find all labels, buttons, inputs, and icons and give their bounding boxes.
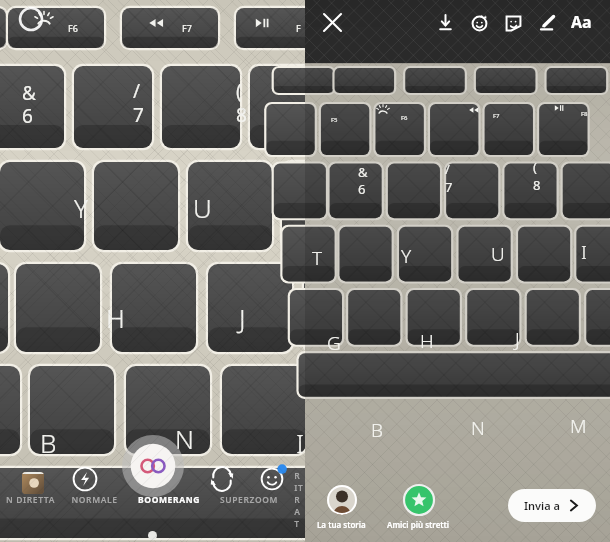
staticText: 6 xyxy=(22,103,33,129)
staticText: J xyxy=(239,300,246,335)
button[interactable]: Face filters xyxy=(259,464,287,492)
staticText: Y xyxy=(74,190,88,225)
staticText: NORMALE xyxy=(71,494,118,506)
button[interactable]: Switch camera xyxy=(209,466,235,492)
staticText: / xyxy=(445,160,450,178)
staticText: 8 xyxy=(236,102,247,128)
staticText: I xyxy=(296,425,305,460)
staticText: ( xyxy=(533,158,537,176)
button[interactable]: Save xyxy=(428,5,462,39)
staticText: & xyxy=(358,163,368,181)
staticText: / xyxy=(133,78,141,104)
button[interactable]: Effects xyxy=(462,5,496,39)
button[interactable]: BOOMERANG xyxy=(138,494,200,506)
button[interactable]: Flash xyxy=(72,466,98,492)
button[interactable]: N DIRETTA xyxy=(6,494,55,506)
staticText: F6 xyxy=(401,114,408,122)
staticText: U xyxy=(193,190,212,225)
staticText: Invia a xyxy=(524,498,560,513)
staticText: F5 xyxy=(331,116,338,124)
staticText: B xyxy=(371,417,383,443)
button[interactable]: RITRAT xyxy=(294,470,299,530)
staticText: N xyxy=(471,415,485,441)
staticText: N DIRETTA xyxy=(6,494,55,506)
staticText: & xyxy=(22,80,36,106)
staticText: 7 xyxy=(445,178,453,196)
staticText: T xyxy=(312,245,323,271)
staticText: F xyxy=(296,22,301,34)
staticText: U xyxy=(491,241,505,267)
staticText: La tua storia xyxy=(317,519,366,530)
button[interactable]: NORMALE xyxy=(71,494,118,506)
staticText: 7 xyxy=(133,102,144,128)
button[interactable]: Draw xyxy=(530,5,564,39)
button[interactable]: La tua storia xyxy=(317,485,366,530)
staticText: F7 xyxy=(182,22,192,34)
staticText: Aa xyxy=(571,11,592,33)
button[interactable]: SUPERZOOM xyxy=(220,494,278,506)
staticText: Amici più stretti xyxy=(387,519,450,530)
staticText: M xyxy=(570,413,587,439)
staticText: F7 xyxy=(493,112,500,120)
staticText: G xyxy=(327,330,341,356)
button[interactable]: Gallery xyxy=(22,472,44,494)
staticText: RITRAT xyxy=(294,470,299,530)
staticText: I xyxy=(581,239,587,265)
staticText: SUPERZOOM xyxy=(220,494,278,506)
staticText: H xyxy=(106,300,125,335)
button[interactable]: Stickers xyxy=(496,5,530,39)
button[interactable]: Capture boomerang xyxy=(122,435,184,497)
staticText: N xyxy=(175,421,194,456)
staticText: H xyxy=(420,328,434,354)
staticText: 8 xyxy=(533,176,541,194)
staticText: BOOMERANG xyxy=(138,494,200,506)
button[interactable]: Aa xyxy=(564,5,598,39)
staticText: J xyxy=(515,326,520,352)
staticText: F8 xyxy=(581,110,588,118)
staticText: ( xyxy=(236,78,242,104)
staticText: 6 xyxy=(358,180,366,198)
staticText: F6 xyxy=(68,22,78,34)
button[interactable]: Close xyxy=(317,7,347,37)
staticText: B xyxy=(40,425,57,460)
staticText: Y xyxy=(401,243,412,269)
button[interactable]: Camera settings xyxy=(18,6,44,32)
button[interactable]: Invia a xyxy=(508,489,596,522)
button[interactable]: Amici più stretti xyxy=(387,485,450,530)
